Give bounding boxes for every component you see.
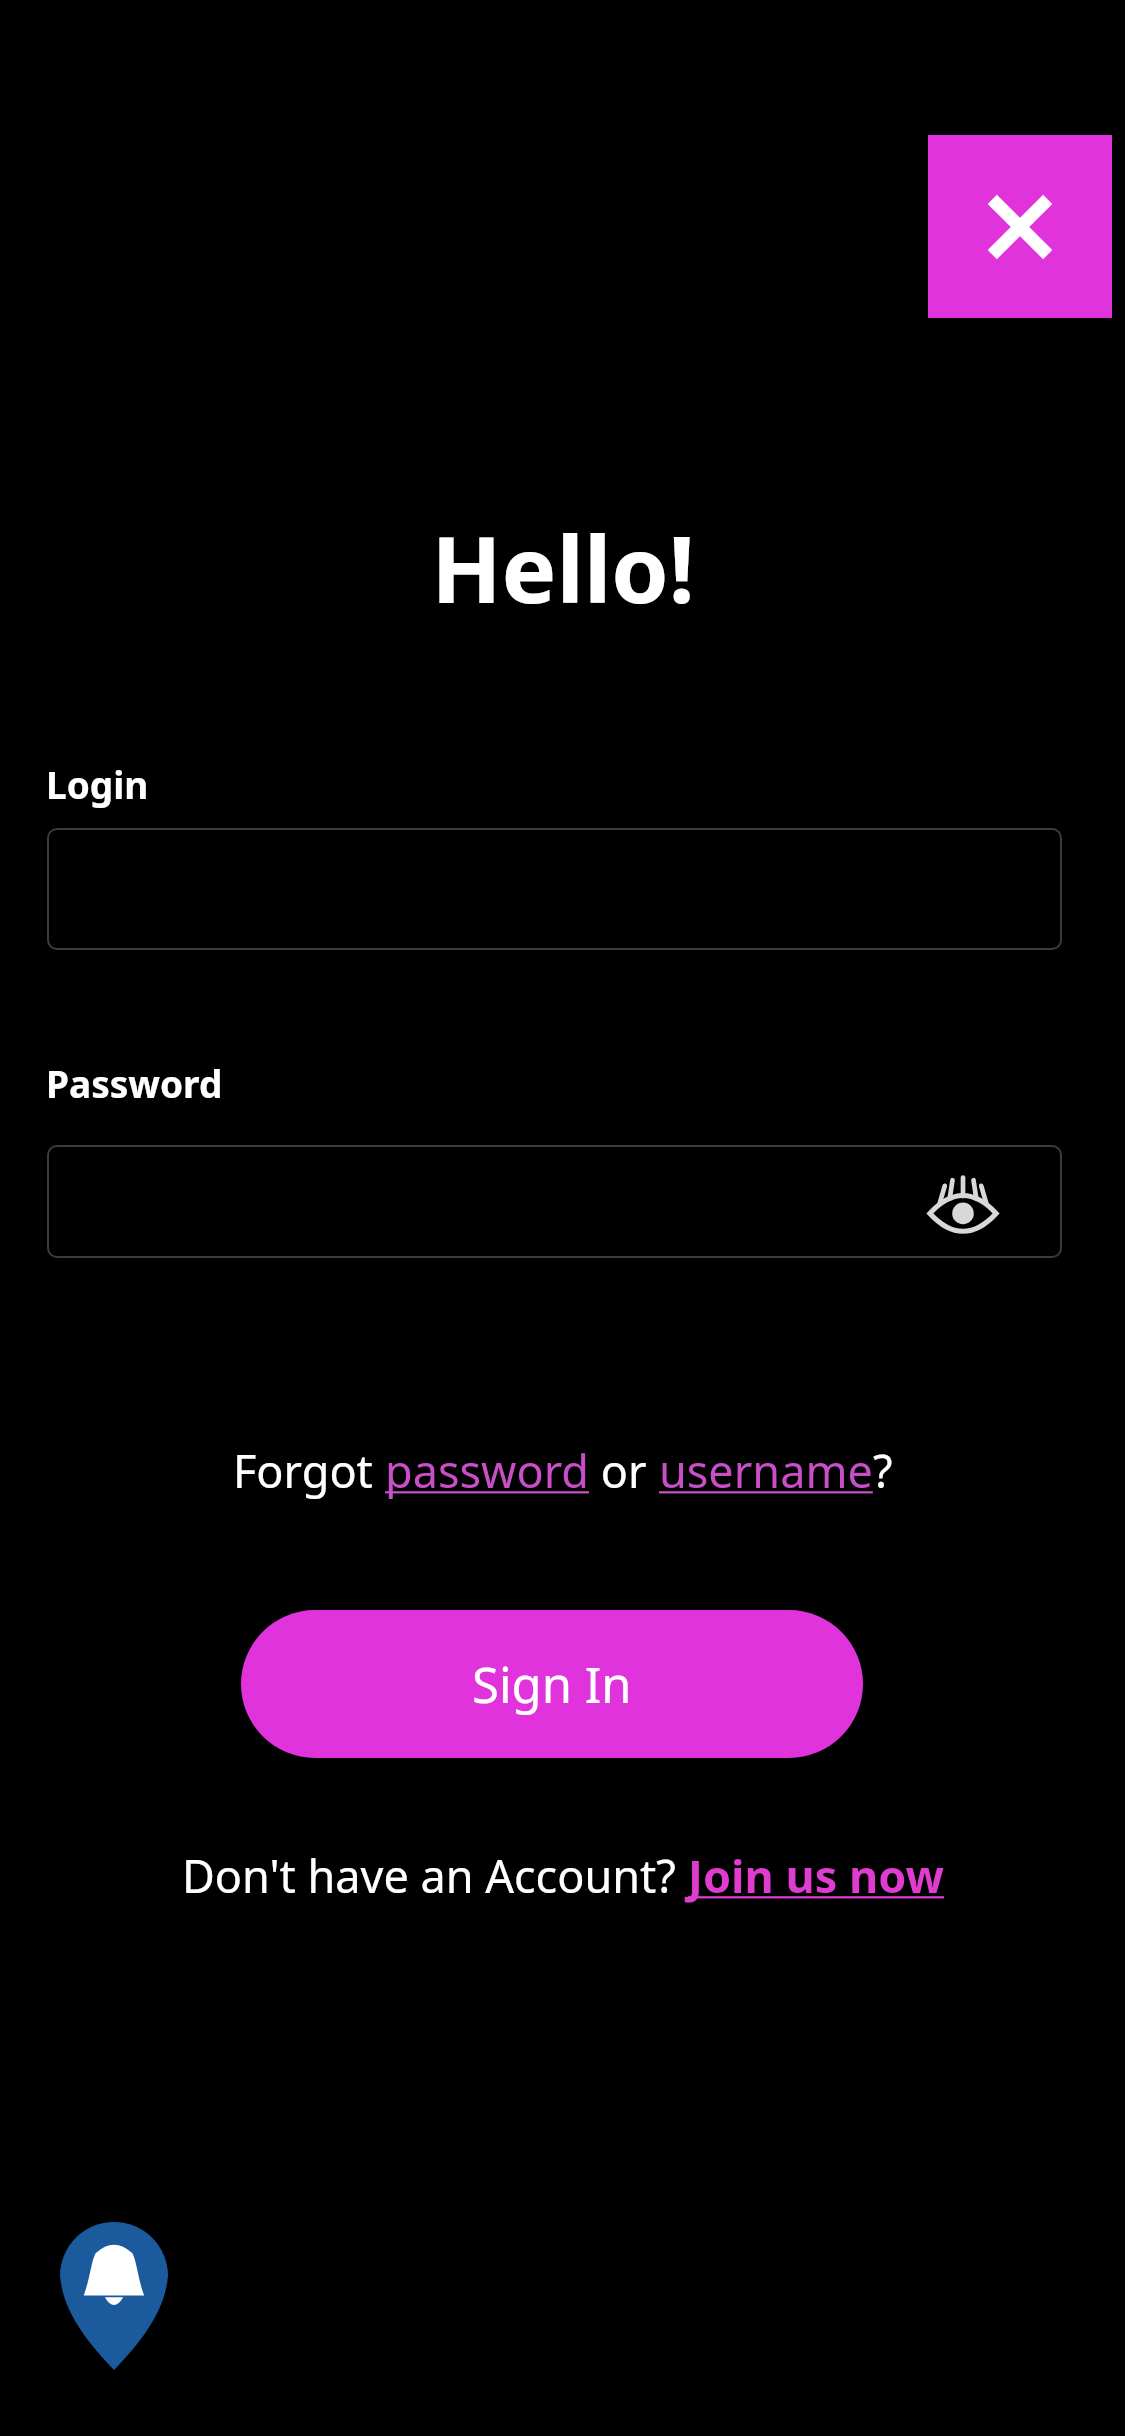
staticText: Hello! — [431, 505, 695, 630]
button[interactable]: Close — [928, 135, 1112, 318]
button[interactable]: username — [659, 1440, 873, 1501]
button[interactable]: Login field — [47, 828, 1062, 950]
staticText: Join us now — [688, 1845, 944, 1906]
button[interactable]: password — [385, 1440, 589, 1501]
staticText: Sign In — [472, 1651, 632, 1718]
button[interactable]: Password field — [47, 1145, 1062, 1258]
button[interactable]: Sign In — [241, 1610, 863, 1758]
button[interactable]: Join us now — [688, 1845, 944, 1906]
staticText: Don't have an Account? — [182, 1845, 688, 1906]
staticText: password — [385, 1440, 589, 1501]
staticText: Password — [46, 1058, 223, 1108]
staticText: username — [659, 1440, 873, 1501]
staticText: ? — [873, 1440, 893, 1501]
staticText: Forgot — [233, 1440, 385, 1501]
staticText: Login — [46, 759, 149, 809]
staticText: or — [589, 1440, 659, 1501]
button[interactable]: Notifications — [60, 2222, 168, 2370]
button[interactable]: Show password — [916, 1158, 1010, 1246]
